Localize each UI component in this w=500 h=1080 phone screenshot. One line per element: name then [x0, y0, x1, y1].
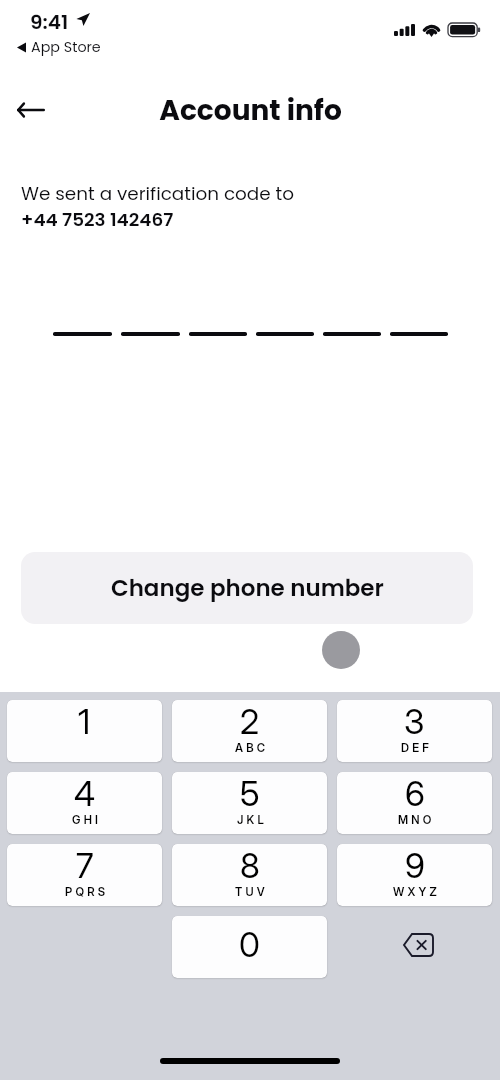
- button[interactable]: 8: [172, 844, 327, 906]
- button[interactable]: 3: [337, 700, 492, 762]
- staticText: TUV: [235, 885, 268, 899]
- button[interactable]: 0: [172, 916, 327, 978]
- button[interactable]: 7: [7, 844, 162, 906]
- button[interactable]: 5: [172, 772, 327, 834]
- button[interactable]: Change phone number: [21, 552, 473, 624]
- staticText: Account info: [159, 91, 342, 130]
- staticText: Change phone number: [111, 572, 384, 604]
- staticText: 6: [405, 773, 425, 814]
- staticText: 8: [240, 845, 260, 886]
- staticText: MNO: [398, 813, 435, 827]
- staticText: 7: [76, 845, 94, 886]
- button[interactable]: 6: [337, 772, 492, 834]
- button[interactable]: [189, 332, 247, 336]
- staticText: DEF: [401, 741, 433, 755]
- button[interactable]: [323, 332, 381, 336]
- staticText: WXYZ: [393, 885, 440, 899]
- button[interactable]: Delete: [337, 916, 492, 978]
- button[interactable]: 4: [7, 772, 162, 834]
- staticText: 5: [240, 773, 260, 814]
- staticText: +44 7523 142467: [21, 207, 174, 233]
- staticText: PQRS: [65, 885, 109, 899]
- button[interactable]: [53, 332, 112, 336]
- staticText: 9: [405, 845, 425, 886]
- button[interactable]: 2: [172, 700, 327, 762]
- staticText: 1: [78, 701, 91, 742]
- staticText: 3: [404, 701, 425, 742]
- button[interactable]: 9: [337, 844, 492, 906]
- staticText: GHI: [72, 813, 102, 827]
- button[interactable]: [256, 332, 314, 336]
- button[interactable]: 1: [7, 700, 162, 762]
- staticText: 2: [240, 701, 260, 742]
- staticText: We sent a verification code to: [21, 181, 295, 207]
- staticText: 9:41: [30, 8, 69, 36]
- button[interactable]: [390, 332, 448, 336]
- staticText: JKL: [237, 813, 267, 827]
- staticText: 4: [74, 773, 96, 814]
- button[interactable]: Back: [6, 85, 56, 135]
- button[interactable]: [121, 332, 180, 336]
- staticText: App Store: [31, 37, 101, 57]
- staticText: ABC: [235, 741, 269, 755]
- staticText: 0: [239, 924, 260, 965]
